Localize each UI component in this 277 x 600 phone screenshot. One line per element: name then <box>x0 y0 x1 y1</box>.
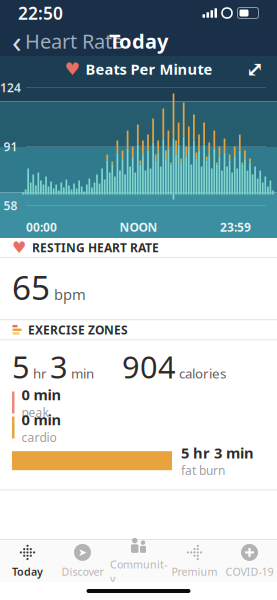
staticText: 00:00 <box>26 219 57 235</box>
staticText: 0 min <box>21 410 61 429</box>
staticText: COVID-19 <box>225 564 273 579</box>
staticText: hr <box>30 364 50 382</box>
staticText: 904 <box>122 346 176 387</box>
staticText: NOON <box>119 219 157 235</box>
staticText: peak <box>21 404 48 420</box>
button[interactable]: Community <box>110 540 167 582</box>
staticText: 5 <box>12 346 30 387</box>
staticText: 22:50 <box>18 1 63 24</box>
button[interactable]: Premium <box>167 540 222 582</box>
button[interactable]: COVID-19 <box>222 540 277 582</box>
staticText: ➤ <box>78 546 87 558</box>
staticText: Community <box>110 557 167 586</box>
staticText: 3 <box>50 346 68 387</box>
staticText: ⤢ <box>246 57 264 81</box>
staticText: bpm <box>54 285 86 304</box>
staticText: cardio <box>21 429 56 445</box>
staticText: Premium <box>171 564 217 579</box>
staticText: 91 <box>3 138 17 154</box>
staticText: ♥ <box>12 238 26 257</box>
staticText: 58 <box>3 197 17 213</box>
staticText: RESTING HEART RATE <box>32 239 159 255</box>
staticText: 5 hr 3 min <box>181 443 254 462</box>
button[interactable]: Today <box>0 540 55 582</box>
button[interactable]: ‹ <box>4 17 131 65</box>
staticText: 23:59 <box>220 219 251 235</box>
staticText: calories <box>176 364 226 382</box>
staticText: Today <box>109 28 168 54</box>
staticText: 124 <box>0 79 21 95</box>
staticText: 0 min <box>21 385 61 404</box>
button[interactable]: ➤ <box>55 540 110 582</box>
staticText: ♥ <box>64 59 80 79</box>
staticText: 65 <box>12 265 50 309</box>
staticText: EXERCISE ZONES <box>28 322 128 338</box>
staticText: Today <box>12 564 43 579</box>
staticText: Discover <box>61 564 103 579</box>
staticText: ‹ <box>12 21 22 61</box>
button[interactable]: Expand chart <box>241 57 269 81</box>
staticText: min <box>68 364 94 382</box>
staticText: fat burn <box>181 462 225 478</box>
staticText: Beats Per Minute <box>85 59 212 79</box>
staticText: Heart Rate <box>25 28 123 54</box>
